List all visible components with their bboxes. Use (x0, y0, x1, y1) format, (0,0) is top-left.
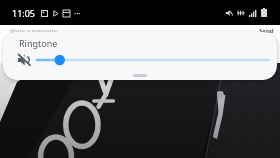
staticText: Like (46, 45, 62, 56)
button[interactable]: Like (0, 37, 94, 63)
staticText: Ringtone (19, 37, 58, 49)
button[interactable]: Ringtone volume slider (37, 51, 269, 69)
staticText: Send (259, 27, 274, 35)
button[interactable]: Mute ringtone (15, 51, 33, 69)
button[interactable]: Comment (94, 37, 187, 63)
staticText: ··· (74, 8, 81, 19)
staticText: Write a message... (10, 27, 62, 35)
staticText: 11:05 (12, 7, 36, 19)
button[interactable]: Expand volume panel (133, 74, 147, 77)
button[interactable]: Share (187, 37, 280, 63)
